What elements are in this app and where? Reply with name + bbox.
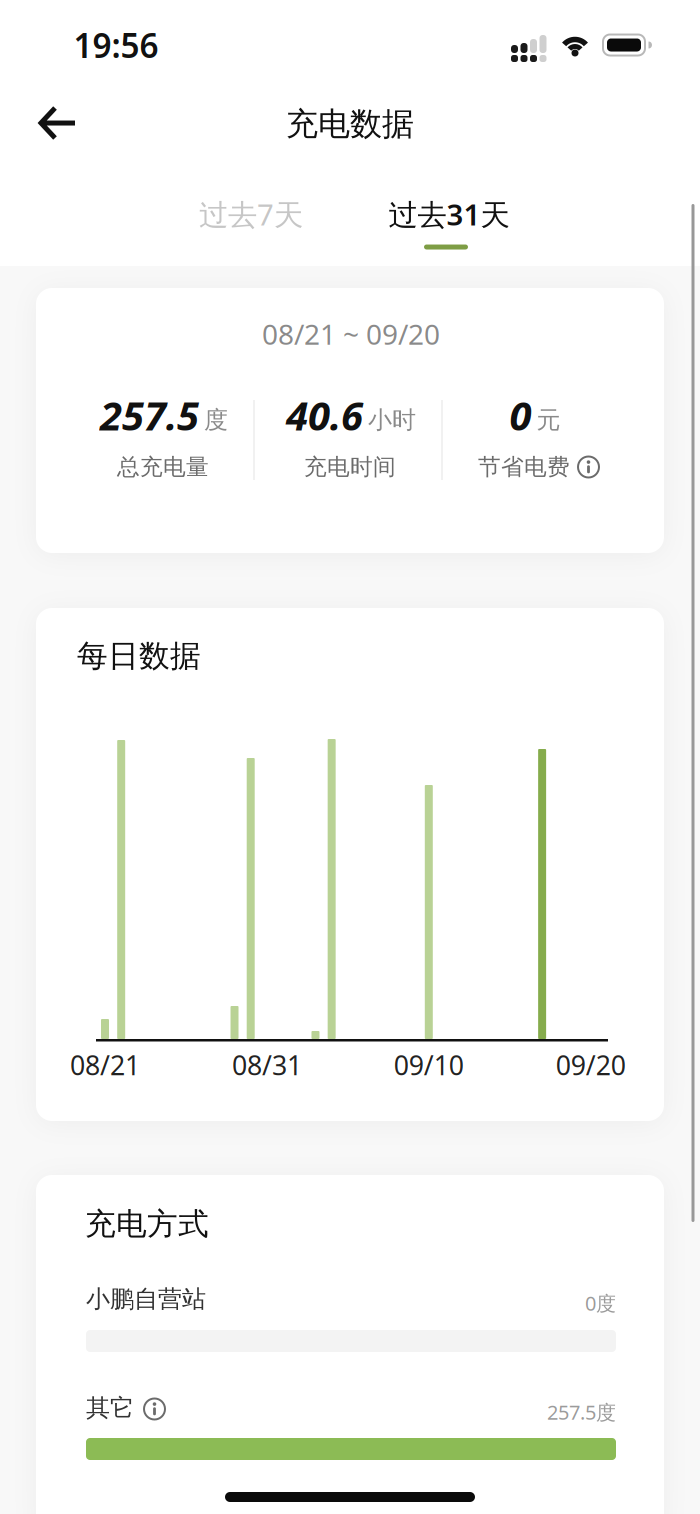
- staticText: 过去7天: [199, 194, 303, 233]
- staticText: 08/31: [232, 1047, 302, 1083]
- button[interactable]: [143, 1397, 166, 1420]
- staticText: 其它: [86, 1393, 134, 1423]
- staticText: 节省电费: [478, 453, 570, 481]
- staticText: 度: [204, 405, 228, 435]
- staticText: 小鹏自营站: [86, 1284, 206, 1314]
- staticText: 元: [536, 405, 560, 435]
- staticText: 257.5: [100, 388, 199, 441]
- staticText: 257.5度: [547, 1399, 616, 1425]
- staticText: 0度: [585, 1290, 616, 1316]
- button[interactable]: [22, 91, 94, 155]
- staticText: 0: [509, 388, 531, 441]
- staticText: 总充电量: [117, 453, 209, 481]
- staticText: 小时: [368, 405, 416, 435]
- staticText: 09/10: [394, 1047, 464, 1083]
- staticText: 40.6: [286, 388, 363, 441]
- button[interactable]: 过去31天: [362, 189, 536, 261]
- button[interactable]: 过去7天: [169, 182, 333, 246]
- button[interactable]: [577, 455, 600, 478]
- staticText: 过去31天: [388, 194, 509, 233]
- staticText: 充电时间: [304, 453, 396, 481]
- staticText: 19:56: [73, 23, 158, 67]
- staticText: 09/20: [556, 1047, 626, 1083]
- staticText: 充电数据: [286, 104, 414, 144]
- staticText: 每日数据: [77, 637, 201, 675]
- staticText: 08/21 ~ 09/20: [262, 315, 440, 353]
- staticText: 充电方式: [85, 1205, 209, 1243]
- staticText: 08/21: [70, 1047, 140, 1083]
